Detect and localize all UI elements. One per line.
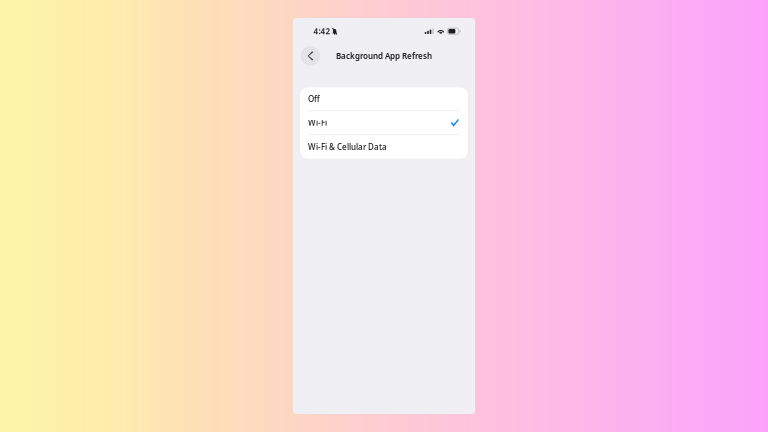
button[interactable]: Back: [301, 46, 320, 66]
staticText: Wi-Fi: [308, 117, 327, 128]
staticText: Background App Refresh: [336, 51, 432, 61]
staticText: Wi-Fi & Cellular Data: [308, 141, 387, 152]
staticText: Off: [308, 94, 320, 104]
button[interactable]: Wi-Fi: [300, 111, 468, 135]
button[interactable]: Wi-Fi & Cellular Data: [300, 135, 468, 159]
button[interactable]: Off: [300, 87, 468, 111]
staticText: 4:42: [313, 26, 330, 36]
